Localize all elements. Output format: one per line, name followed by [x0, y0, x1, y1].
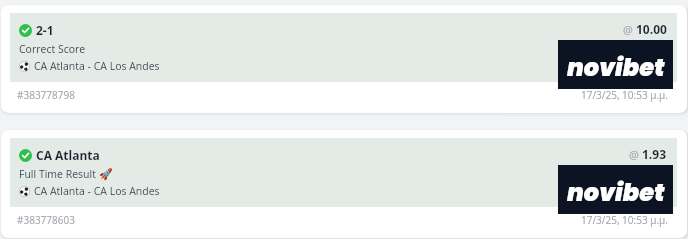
staticText: 17/3/25, 10:53 μ.μ. — [581, 88, 668, 102]
staticText: 1.93 — [642, 146, 667, 162]
staticText: @ — [629, 147, 639, 162]
staticText: #383778603 — [17, 213, 75, 227]
button[interactable]: 2-1 — [1, 5, 687, 113]
staticText: Correct Score — [19, 42, 86, 56]
staticText: novibet — [567, 176, 665, 210]
staticText: #383778798 — [17, 88, 75, 102]
staticText: 2-1 — [36, 22, 54, 38]
staticText: CA Atlanta - CA Los Andes — [34, 59, 160, 73]
staticText: CA Atlanta - CA Los Andes — [34, 184, 160, 198]
staticText: @ — [623, 22, 633, 37]
staticText: Full Time Result — [19, 167, 96, 181]
staticText: 🚀 — [99, 168, 113, 181]
staticText: CA Atlanta — [36, 147, 100, 163]
staticText: 10.00 — [636, 21, 667, 37]
staticText: 17/3/25, 10:53 μ.μ. — [581, 213, 668, 227]
staticText: novibet — [567, 51, 665, 85]
button[interactable]: Novibet — [558, 165, 673, 214]
button[interactable]: CA Atlanta — [1, 130, 687, 238]
button[interactable]: Novibet — [558, 40, 673, 89]
